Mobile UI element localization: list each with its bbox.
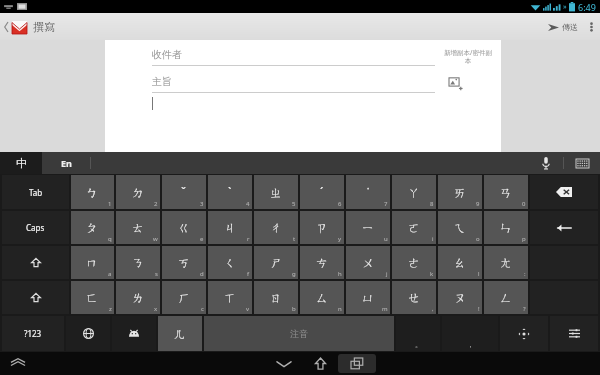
button[interactable]: ㄤ — [484, 246, 528, 279]
button[interactable]: ㄚ — [392, 175, 436, 209]
staticText: ˋ — [228, 184, 232, 200]
button[interactable]: Voice input — [529, 152, 563, 174]
staticText: ㄙ — [316, 290, 329, 305]
button[interactable]: ㄓ — [254, 175, 298, 209]
button[interactable]: ˇ — [162, 175, 206, 209]
button[interactable]: ㄕ — [254, 246, 298, 279]
staticText: f — [247, 270, 250, 278]
staticText: 1 — [108, 200, 112, 208]
button[interactable]: ㄌ — [116, 281, 160, 314]
button[interactable]: ㄒ — [208, 281, 252, 314]
button[interactable]: ㄍ — [162, 211, 206, 244]
button[interactable]: ㄎ — [162, 246, 206, 279]
button[interactable]: Emoji — [112, 316, 156, 351]
staticText: y — [338, 235, 342, 243]
button[interactable]: ?123 — [2, 316, 64, 351]
button[interactable]: ㄟ — [438, 211, 482, 244]
button[interactable]: ˙ — [346, 175, 390, 209]
button[interactable]: ㄇ — [71, 246, 114, 279]
button[interactable]: Back — [265, 356, 303, 372]
button[interactable]: ㄆ — [71, 211, 114, 244]
button[interactable]: ˊ — [300, 175, 344, 209]
button[interactable]: Input settings — [550, 316, 598, 351]
button[interactable]: ㄙ — [300, 281, 344, 314]
button[interactable]: ㄘ — [300, 246, 344, 279]
button[interactable]: ㄣ — [484, 211, 528, 244]
staticText: En — [61, 157, 72, 169]
staticText: a — [108, 270, 112, 278]
button[interactable]: ㄔ — [254, 211, 298, 244]
button[interactable]: ㄧ — [346, 211, 390, 244]
button[interactable]: ㄦ — [158, 316, 202, 351]
staticText: ㄌ — [132, 290, 145, 305]
button[interactable]: ㄉ — [116, 175, 160, 209]
staticText: 3 — [200, 200, 204, 208]
button[interactable]: ㄊ — [116, 211, 160, 244]
button[interactable]: Hide keyboard — [564, 152, 600, 174]
button[interactable]: ㄡ — [438, 281, 482, 314]
staticText: g — [292, 270, 296, 278]
button[interactable]: ㄐ — [208, 211, 252, 244]
button[interactable]: ㄝ — [392, 281, 436, 314]
staticText: ㄛ — [408, 220, 421, 235]
button[interactable]: 收件者 — [152, 48, 435, 66]
staticText: ㄐ — [224, 220, 237, 235]
button[interactable]: ㄑ — [208, 246, 252, 279]
button[interactable]: Shift — [2, 281, 69, 314]
button[interactable]: Shift — [2, 246, 69, 279]
staticText: ㄅ — [86, 185, 99, 200]
button[interactable]: ˋ — [208, 175, 252, 209]
button[interactable]: ㄅ — [71, 175, 114, 209]
staticText: k — [430, 270, 434, 278]
staticText: 6:49 — [578, 1, 596, 13]
staticText: 注音 — [290, 328, 308, 339]
button[interactable]: 新增副本/密件副本 — [443, 48, 493, 65]
button[interactable]: ㄖ — [254, 281, 298, 314]
button[interactable]: 主旨 — [152, 75, 435, 93]
staticText: ㄋ — [132, 255, 145, 270]
button[interactable]: En — [42, 152, 90, 174]
staticText: ㄩ — [362, 290, 375, 305]
staticText: » — [563, 2, 567, 12]
button[interactable]: ㄋ — [116, 246, 160, 279]
button[interactable]: Caps — [2, 211, 69, 244]
staticText: ㄗ — [316, 220, 329, 235]
button[interactable]: Backspace — [530, 175, 598, 209]
button[interactable]: ㄠ — [438, 246, 482, 279]
button[interactable]: Change language — [66, 316, 110, 351]
button[interactable]: Home — [303, 354, 338, 373]
button[interactable]: ㄈ — [71, 281, 114, 314]
button[interactable]: ㄢ — [484, 175, 528, 209]
button[interactable]: ㄜ — [392, 246, 436, 279]
button[interactable]: 中 — [0, 152, 42, 174]
staticText: j — [386, 270, 388, 278]
button[interactable]: Recent apps — [338, 354, 376, 373]
staticText: Caps — [26, 222, 45, 233]
button[interactable]: Enter — [530, 211, 598, 244]
staticText: ㄕ — [270, 255, 283, 270]
button[interactable]: 注音 — [204, 316, 394, 351]
button[interactable]: Tab — [2, 175, 69, 209]
staticText: 9 — [476, 200, 480, 208]
button[interactable]: ㄗ — [300, 211, 344, 244]
staticText: q — [108, 235, 112, 243]
button[interactable]: 傳送 — [543, 18, 583, 36]
staticText: , — [432, 305, 434, 313]
button[interactable]: More options — [583, 17, 600, 37]
button[interactable]: ㄥ — [484, 281, 528, 314]
button[interactable]: ㄏ — [162, 281, 206, 314]
button[interactable]: ㄩ — [346, 281, 390, 314]
staticText: 傳送 — [562, 22, 578, 32]
button[interactable]: ㄛ — [392, 211, 436, 244]
button[interactable] — [152, 97, 435, 123]
button[interactable]: Notifications — [6, 355, 30, 372]
button[interactable]: ㄨ — [346, 246, 390, 279]
button[interactable]: Arrow keys — [500, 316, 548, 351]
button[interactable]: Attach image — [447, 75, 465, 93]
button[interactable]: Up — [2, 20, 57, 34]
button[interactable]: ㄞ — [438, 175, 482, 209]
